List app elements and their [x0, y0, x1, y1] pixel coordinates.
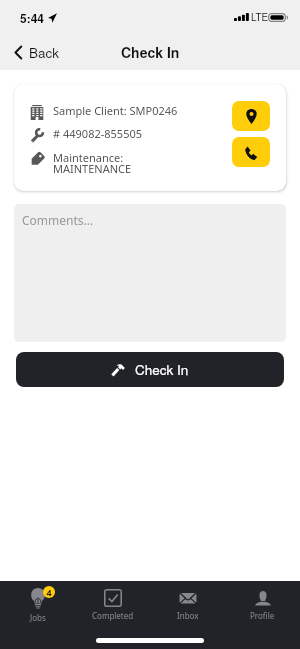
button[interactable]: Completed [75, 583, 150, 627]
button[interactable]: Directions [232, 101, 270, 131]
staticText: Profile [250, 610, 275, 621]
button[interactable]: Call [232, 137, 270, 167]
staticText: Completed [92, 610, 134, 621]
button[interactable]: Check In [16, 352, 284, 387]
staticText: LTE [251, 10, 268, 24]
staticText: 4 [46, 586, 52, 598]
staticText: # 449082-855505 [53, 126, 143, 141]
button[interactable]: Back [0, 37, 70, 68]
button[interactable]: Comments... [14, 204, 286, 342]
staticText: Back [29, 43, 60, 62]
button[interactable]: Inbox [150, 583, 225, 627]
staticText: Check In [135, 360, 189, 379]
staticText: Sample Client: SMP0246 [53, 103, 178, 118]
button[interactable]: Profile [225, 583, 300, 627]
staticText: Inbox [177, 610, 199, 621]
staticText: MAINTENANCE [53, 161, 132, 176]
staticText: Comments... [22, 212, 94, 228]
staticText: Maintenance: [53, 150, 124, 165]
staticText: 5:44 [20, 9, 45, 26]
button[interactable]: 4 [0, 583, 75, 627]
staticText: Jobs [30, 612, 46, 623]
staticText: Check In [121, 42, 180, 62]
